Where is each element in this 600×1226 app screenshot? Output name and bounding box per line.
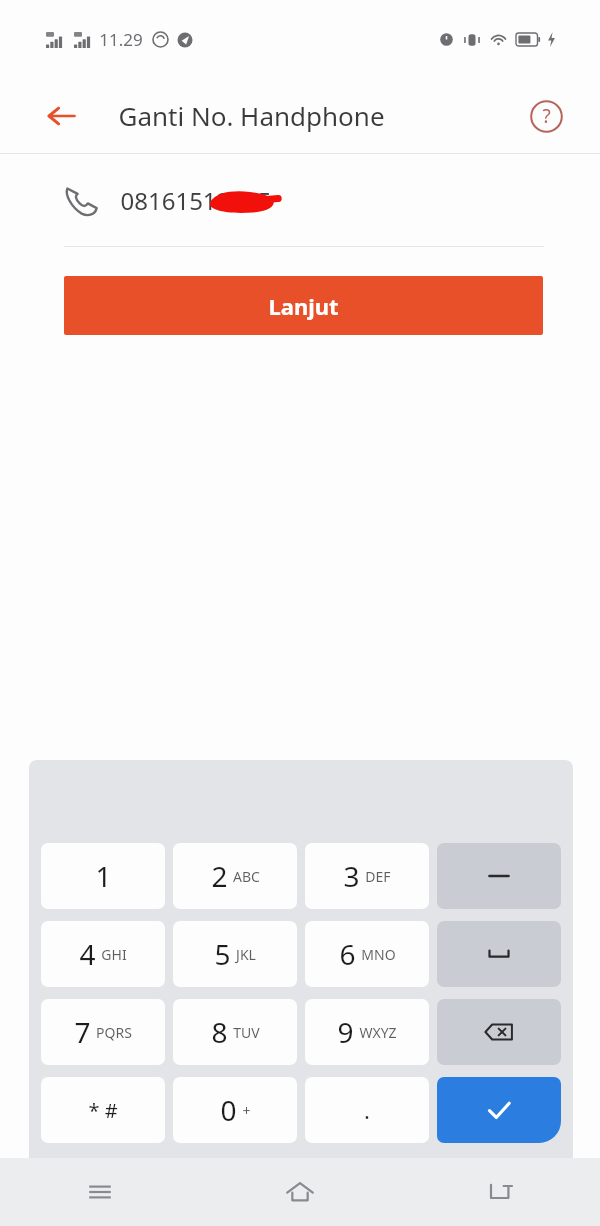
staticText: 6 [339,935,356,973]
staticText: MNO [361,945,396,964]
button[interactable]: 2 [173,843,297,909]
staticText: 9 [337,1013,354,1051]
button[interactable]: . [305,1077,429,1143]
staticText: + [242,1101,251,1120]
button[interactable]: Backspace [437,999,561,1065]
button[interactable]: 6 [305,921,429,987]
staticText: Lanjut [268,291,339,321]
button[interactable]: 0 [173,1077,297,1143]
button[interactable]: Recents [0,1158,200,1226]
staticText: 3 [343,857,360,895]
button[interactable]: 4 [41,921,165,987]
staticText: 08161512345 [120,184,272,217]
staticText: WXYZ [359,1023,397,1042]
button[interactable]: 8 [173,999,297,1065]
button[interactable]: Help [521,91,571,141]
button[interactable]: Back [400,1158,600,1226]
button[interactable]: 9 [305,999,429,1065]
button[interactable]: Enter [437,1077,561,1143]
button[interactable]: 1 [41,843,165,909]
staticText: JKL [236,945,256,964]
staticText: 7 [74,1013,91,1051]
staticText: * # [88,1097,118,1124]
button[interactable]: 3 [305,843,429,909]
button[interactable]: Back [34,89,88,143]
button[interactable]: 5 [173,921,297,987]
button[interactable]: Lanjut [64,276,543,335]
staticText: ABC [233,867,260,886]
staticText: GHI [101,945,127,964]
staticText: ? [542,103,551,129]
button[interactable]: Home [200,1158,400,1226]
button[interactable]: 7 [41,999,165,1065]
staticText: . [364,1095,370,1125]
staticText: 8 [211,1013,228,1051]
staticText: Ganti No. Handphone [118,98,385,133]
staticText: 11.29 [99,28,143,51]
button[interactable]: Space [437,921,561,987]
staticText: 0 [220,1091,237,1129]
staticText: 2 [211,857,228,895]
staticText: DEF [365,867,391,886]
staticText: PQRS [96,1023,132,1042]
button[interactable]: Dash [437,843,561,909]
button[interactable]: * # [41,1077,165,1143]
staticText: 5 [214,935,231,973]
staticText: 1 [95,857,112,895]
staticText: 4 [79,935,96,973]
staticText: TUV [233,1023,260,1042]
